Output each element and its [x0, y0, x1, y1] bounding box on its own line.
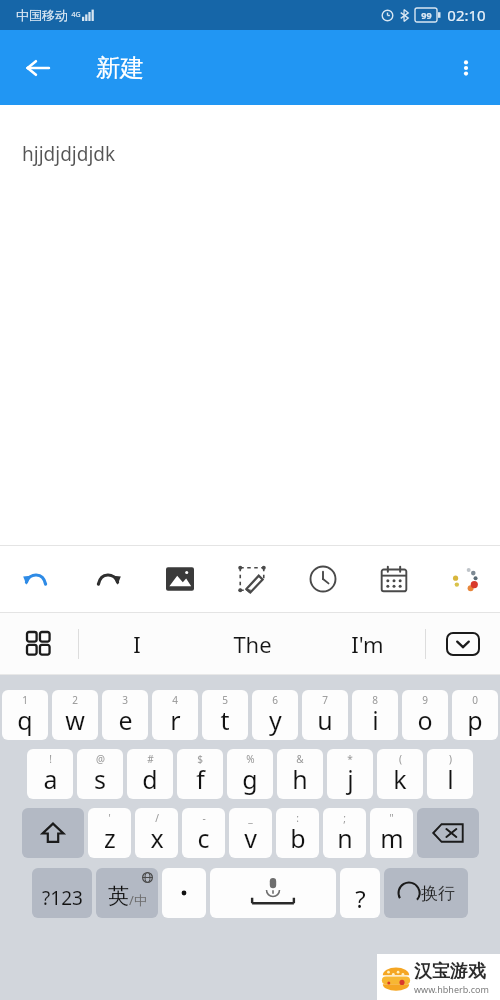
staticText: 新建 [96, 53, 144, 83]
button[interactable]: Switch language [96, 868, 158, 918]
button[interactable]: I [79, 613, 195, 675]
button[interactable]: $ [177, 749, 223, 799]
staticText: 换行 [421, 883, 455, 904]
button[interactable]: Redo [72, 546, 144, 612]
staticText: ?123 [42, 885, 83, 911]
staticText: o [417, 703, 433, 737]
staticText: w [65, 703, 85, 737]
staticText: ; [343, 811, 346, 825]
staticText: 4 [172, 693, 178, 707]
staticText: c [197, 821, 210, 855]
button[interactable]: Insert image [144, 546, 216, 612]
button[interactable]: Hide keyboard [426, 613, 500, 675]
button[interactable]: Calendar [358, 546, 429, 612]
button[interactable]: 0 [452, 690, 498, 740]
staticText: 99 [421, 9, 432, 21]
button[interactable]: * [327, 749, 373, 799]
button[interactable]: " [370, 808, 413, 858]
staticText: 02:10 [447, 5, 486, 25]
staticText: v [244, 821, 257, 855]
button[interactable]: % [227, 749, 273, 799]
button[interactable]: 8 [352, 690, 398, 740]
staticText: u [317, 703, 333, 737]
button[interactable]: 4 [152, 690, 198, 740]
button[interactable]: hjjdjdjdjdk [0, 105, 500, 545]
button[interactable]: More options [440, 42, 492, 94]
button[interactable]: Period [162, 868, 206, 918]
staticText: ! [49, 752, 52, 766]
staticText: I'm [351, 629, 384, 659]
button[interactable]: 5 [202, 690, 248, 740]
staticText: : [296, 811, 299, 825]
button[interactable]: Enter [384, 868, 468, 918]
staticText: 2 [72, 693, 78, 707]
staticText: I [133, 629, 141, 659]
staticText: & [296, 752, 304, 766]
button[interactable]: _ [229, 808, 272, 858]
staticText: % [246, 752, 255, 766]
staticText: b [290, 821, 306, 855]
staticText: " [389, 811, 394, 825]
staticText: x [150, 821, 164, 855]
button[interactable]: Shift [22, 808, 84, 858]
staticText: 汉宝游戏 [414, 960, 486, 983]
staticText: l [447, 762, 454, 796]
button[interactable]: I'm [310, 613, 425, 675]
button[interactable]: - [182, 808, 225, 858]
staticText: t [220, 703, 230, 737]
staticText: ( [399, 752, 402, 766]
button[interactable]: ( [377, 749, 423, 799]
button[interactable]: @ [77, 749, 123, 799]
staticText: _ [248, 811, 253, 825]
staticText: - [202, 811, 206, 825]
button[interactable]: Backspace [417, 808, 479, 858]
button[interactable]: / [135, 808, 178, 858]
button[interactable]: : [276, 808, 319, 858]
button[interactable]: Space [210, 868, 336, 918]
button[interactable]: # [127, 749, 173, 799]
staticText: d [142, 762, 158, 796]
button[interactable]: 3 [102, 690, 148, 740]
button[interactable]: 9 [402, 690, 448, 740]
staticText: h [292, 762, 308, 796]
button[interactable]: ?123 [32, 868, 92, 918]
staticText: i [372, 703, 379, 737]
button[interactable]: 1 [2, 690, 48, 740]
button[interactable]: Keyboard menu [0, 613, 78, 675]
staticText: ' [108, 811, 111, 825]
staticText: 3 [122, 693, 128, 707]
button[interactable]: ) [427, 749, 473, 799]
staticText: j [347, 762, 354, 796]
staticText: /中 [129, 891, 147, 909]
staticText: 1 [22, 693, 28, 707]
staticText: 4G [71, 10, 81, 20]
staticText: f [196, 762, 205, 796]
button[interactable]: More tools [429, 546, 500, 612]
button[interactable]: ! [27, 749, 73, 799]
staticText: * [347, 752, 353, 766]
staticText: # [147, 752, 154, 766]
staticText: a [43, 762, 58, 796]
staticText: 英 [108, 883, 129, 909]
staticText: 5 [222, 693, 228, 707]
button[interactable]: Draw [216, 546, 287, 612]
button[interactable]: 7 [302, 690, 348, 740]
button[interactable]: 2 [52, 690, 98, 740]
staticText: www.hbherb.com [414, 983, 489, 995]
button[interactable]: ; [323, 808, 366, 858]
staticText: m [380, 821, 404, 855]
button[interactable]: 6 [252, 690, 298, 740]
button[interactable]: The [195, 613, 310, 675]
button[interactable]: Reminder [287, 546, 358, 612]
button[interactable]: ? [340, 868, 380, 918]
staticText: 6 [272, 693, 278, 707]
button[interactable]: ' [88, 808, 131, 858]
staticText: 7 [322, 693, 328, 707]
staticText: hjjdjdjdjdk [22, 141, 116, 167]
button[interactable]: Undo [0, 546, 72, 612]
staticText: g [242, 762, 258, 796]
button[interactable]: Back [12, 42, 64, 94]
button[interactable]: & [277, 749, 323, 799]
staticText: 8 [372, 693, 378, 707]
staticText: p [467, 703, 483, 737]
